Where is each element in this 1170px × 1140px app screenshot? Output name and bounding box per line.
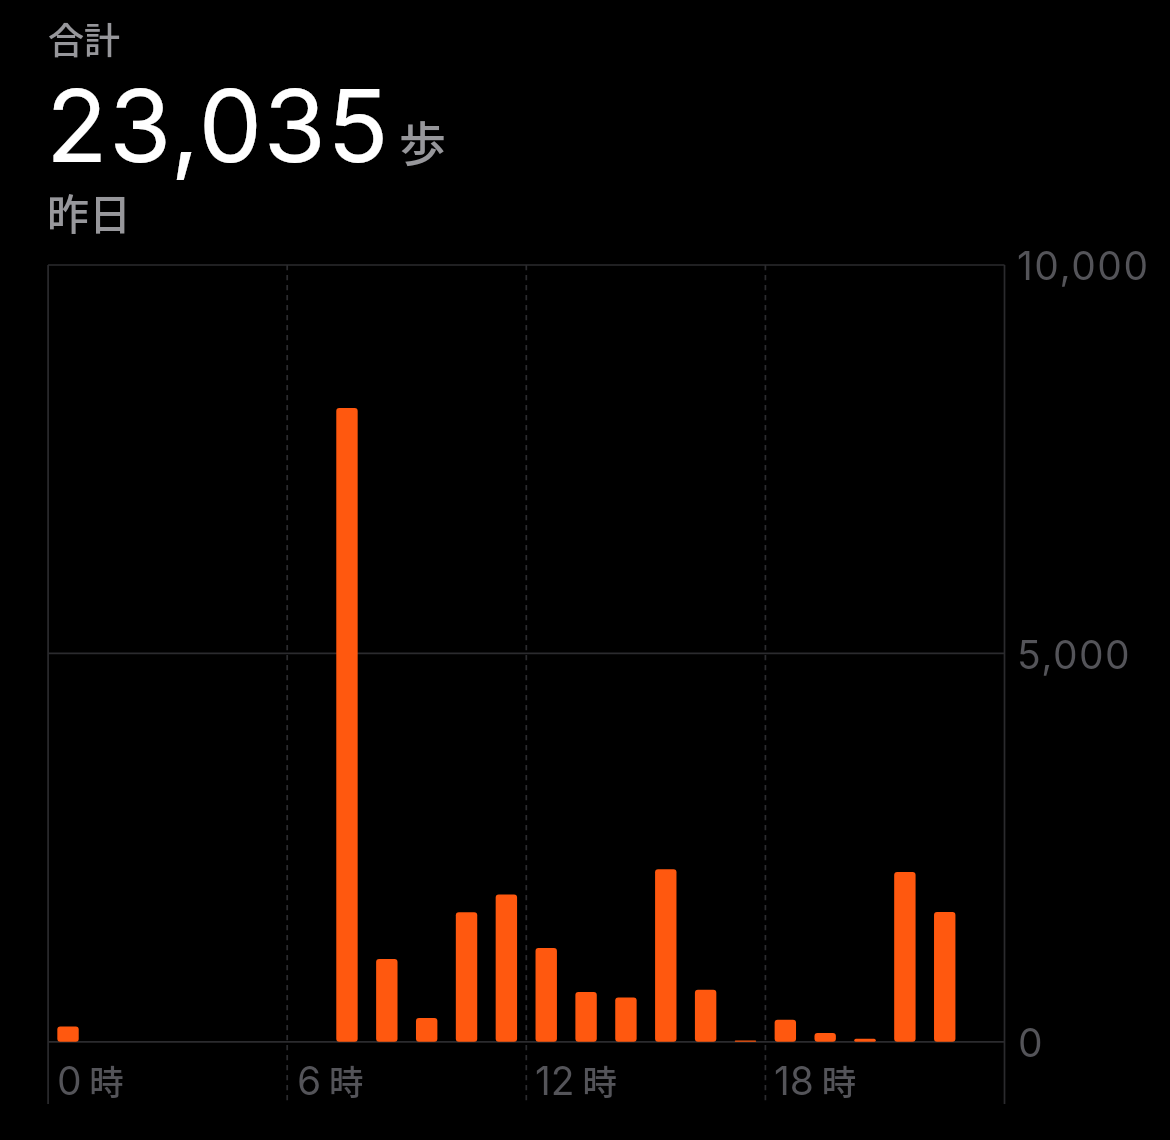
staticText: 昨日 [47, 181, 132, 242]
staticText: 10,000 [1017, 242, 1150, 289]
staticText: 歩 [399, 106, 446, 174]
staticText: 12 時 [535, 1055, 617, 1105]
staticText: 5,000 [1017, 631, 1132, 678]
button[interactable]: Hourly step chart for yesterday [0, 248, 1170, 1140]
staticText: 6 時 [297, 1055, 364, 1105]
staticText: 18 時 [774, 1055, 857, 1105]
staticText: 0 時 [57, 1055, 124, 1105]
staticText: 合計 [48, 12, 121, 64]
button[interactable]: 合計 [0, 0, 1170, 248]
staticText: 0 [1018, 1019, 1045, 1066]
staticText: 23,035 [46, 64, 391, 186]
